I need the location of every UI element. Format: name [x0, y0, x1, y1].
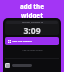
staticText: ADD THE WIDGET [12, 40, 32, 43]
other: App icon [6, 64, 10, 68]
staticText: widget [21, 11, 43, 19]
staticText: 3:09 [23, 25, 41, 34]
other: Add widget [8, 40, 11, 43]
staticText: add the [20, 2, 44, 10]
button[interactable]: Saturday, December 30 [5, 20, 59, 35]
staticText: Saturday, December 30 [22, 21, 43, 24]
staticText: Add to Home screen [22, 49, 43, 52]
button[interactable]: App icon [5, 62, 59, 69]
button[interactable]: Add widget [5, 37, 59, 45]
